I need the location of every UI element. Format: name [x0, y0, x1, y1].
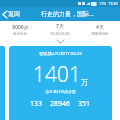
staticText: 团队第4月/2017.03.23	[39, 51, 82, 57]
staticText: 03.20-03.26	[50, 31, 70, 36]
staticText: 返回	[8, 10, 20, 18]
staticText: 17:25	[108, 1, 118, 6]
button[interactable]: 返回	[0, 7, 23, 21]
button[interactable]: 团队第4月/2017.03.23	[9, 46, 112, 120]
staticText: 28946	[50, 99, 71, 109]
staticText: 4天	[96, 24, 104, 31]
button[interactable]: 7天	[40, 22, 80, 37]
staticText: 351	[78, 99, 91, 109]
staticText: 133	[30, 99, 43, 109]
staticText: 7天	[56, 23, 64, 30]
staticText: 1401	[33, 60, 81, 89]
staticText: 当月累计完成步数	[45, 89, 76, 94]
staticText: 需要坚持时	[91, 32, 109, 36]
staticText: 8000步	[12, 24, 29, 31]
button[interactable]: 8000步	[0, 23, 40, 37]
staticText: 万	[81, 78, 88, 87]
staticText: 11%	[99, 1, 107, 6]
staticText: 行走的力量，国际…	[41, 10, 94, 18]
staticText: 每日目标	[13, 32, 27, 36]
button[interactable]: Expand details	[0, 38, 120, 44]
button[interactable]: 4天	[80, 23, 120, 37]
button[interactable]: Previous team card	[0, 46, 5, 120]
